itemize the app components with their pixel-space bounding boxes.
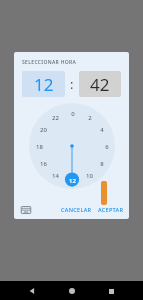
button[interactable]: Home <box>65 284 79 298</box>
staticText: ACEPTAR <box>98 206 124 213</box>
button[interactable]: Recent apps <box>104 284 118 298</box>
button[interactable]: 42 <box>79 71 121 97</box>
staticText: 4 <box>100 126 104 134</box>
button[interactable]: Switch to text input <box>19 203 32 216</box>
button[interactable]: 12 <box>22 71 65 97</box>
staticText: 8 <box>100 160 104 168</box>
button[interactable]: ACEPTAR <box>98 206 124 213</box>
button[interactable]: Back <box>25 284 39 298</box>
staticText: 0 <box>71 110 75 118</box>
staticText: 14 <box>52 172 59 180</box>
staticText: 20 <box>40 126 47 134</box>
staticText: : <box>70 75 74 93</box>
staticText: 2 <box>88 114 92 122</box>
button[interactable]: CANCELAR <box>61 206 92 213</box>
staticText: 22 <box>52 114 59 122</box>
staticText: SELECCIONAR HORA <box>22 59 77 66</box>
staticText: 6 <box>105 143 109 151</box>
staticText: 10 <box>86 172 93 180</box>
staticText: 12 <box>69 177 76 185</box>
staticText: 42 <box>90 73 110 96</box>
staticText: 18 <box>36 143 43 151</box>
staticText: 16 <box>40 160 47 168</box>
staticText: CANCELAR <box>61 206 92 213</box>
staticText: 12 <box>34 73 54 96</box>
